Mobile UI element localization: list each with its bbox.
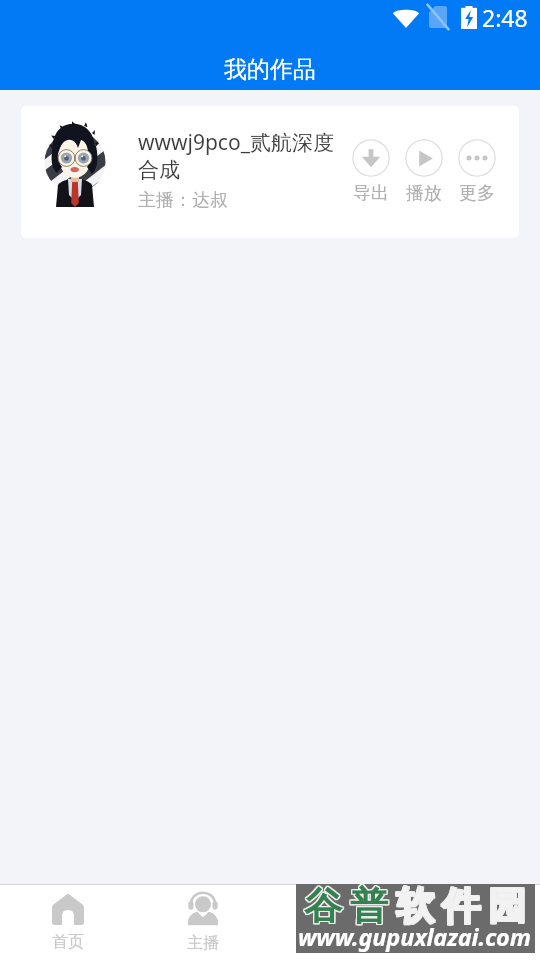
staticText: 谷普软件园 [300,881,530,929]
button[interactable]: Export [352,139,390,205]
staticText: www.gupuxlazai.com [298,921,531,953]
staticText: 谷普软件园 [299,882,529,930]
button[interactable]: wwwj9pco_贰航深度合成 [21,106,519,238]
staticText: 谷普软件园 [299,883,529,931]
staticText: 主播 [187,933,219,953]
staticText: 我的作品 [224,55,316,84]
staticText: 导出 [353,182,389,205]
staticText: 播放 [406,182,442,205]
staticText: 谷普软件园 [301,883,531,931]
staticText: 软件园 [392,882,530,930]
button[interactable]: 首页 [0,885,135,960]
staticText: 2:48 [482,2,528,33]
button[interactable]: Play [405,139,443,205]
staticText: 谷普软件园 [301,882,531,930]
staticText: 首页 [52,932,84,952]
staticText: wwwj9pco_贰航深度合成 [138,128,338,183]
button[interactable]: 主播 [135,885,270,960]
staticText: 更多 [459,182,495,205]
button[interactable]: More [458,139,496,205]
staticText: 谷普软件园 [301,881,531,929]
staticText: 谷普软件园 [300,883,530,931]
staticText: 谷普 [300,882,392,930]
staticText: 主播：达叔 [138,189,228,212]
staticText: 谷普软件园 [299,881,529,929]
